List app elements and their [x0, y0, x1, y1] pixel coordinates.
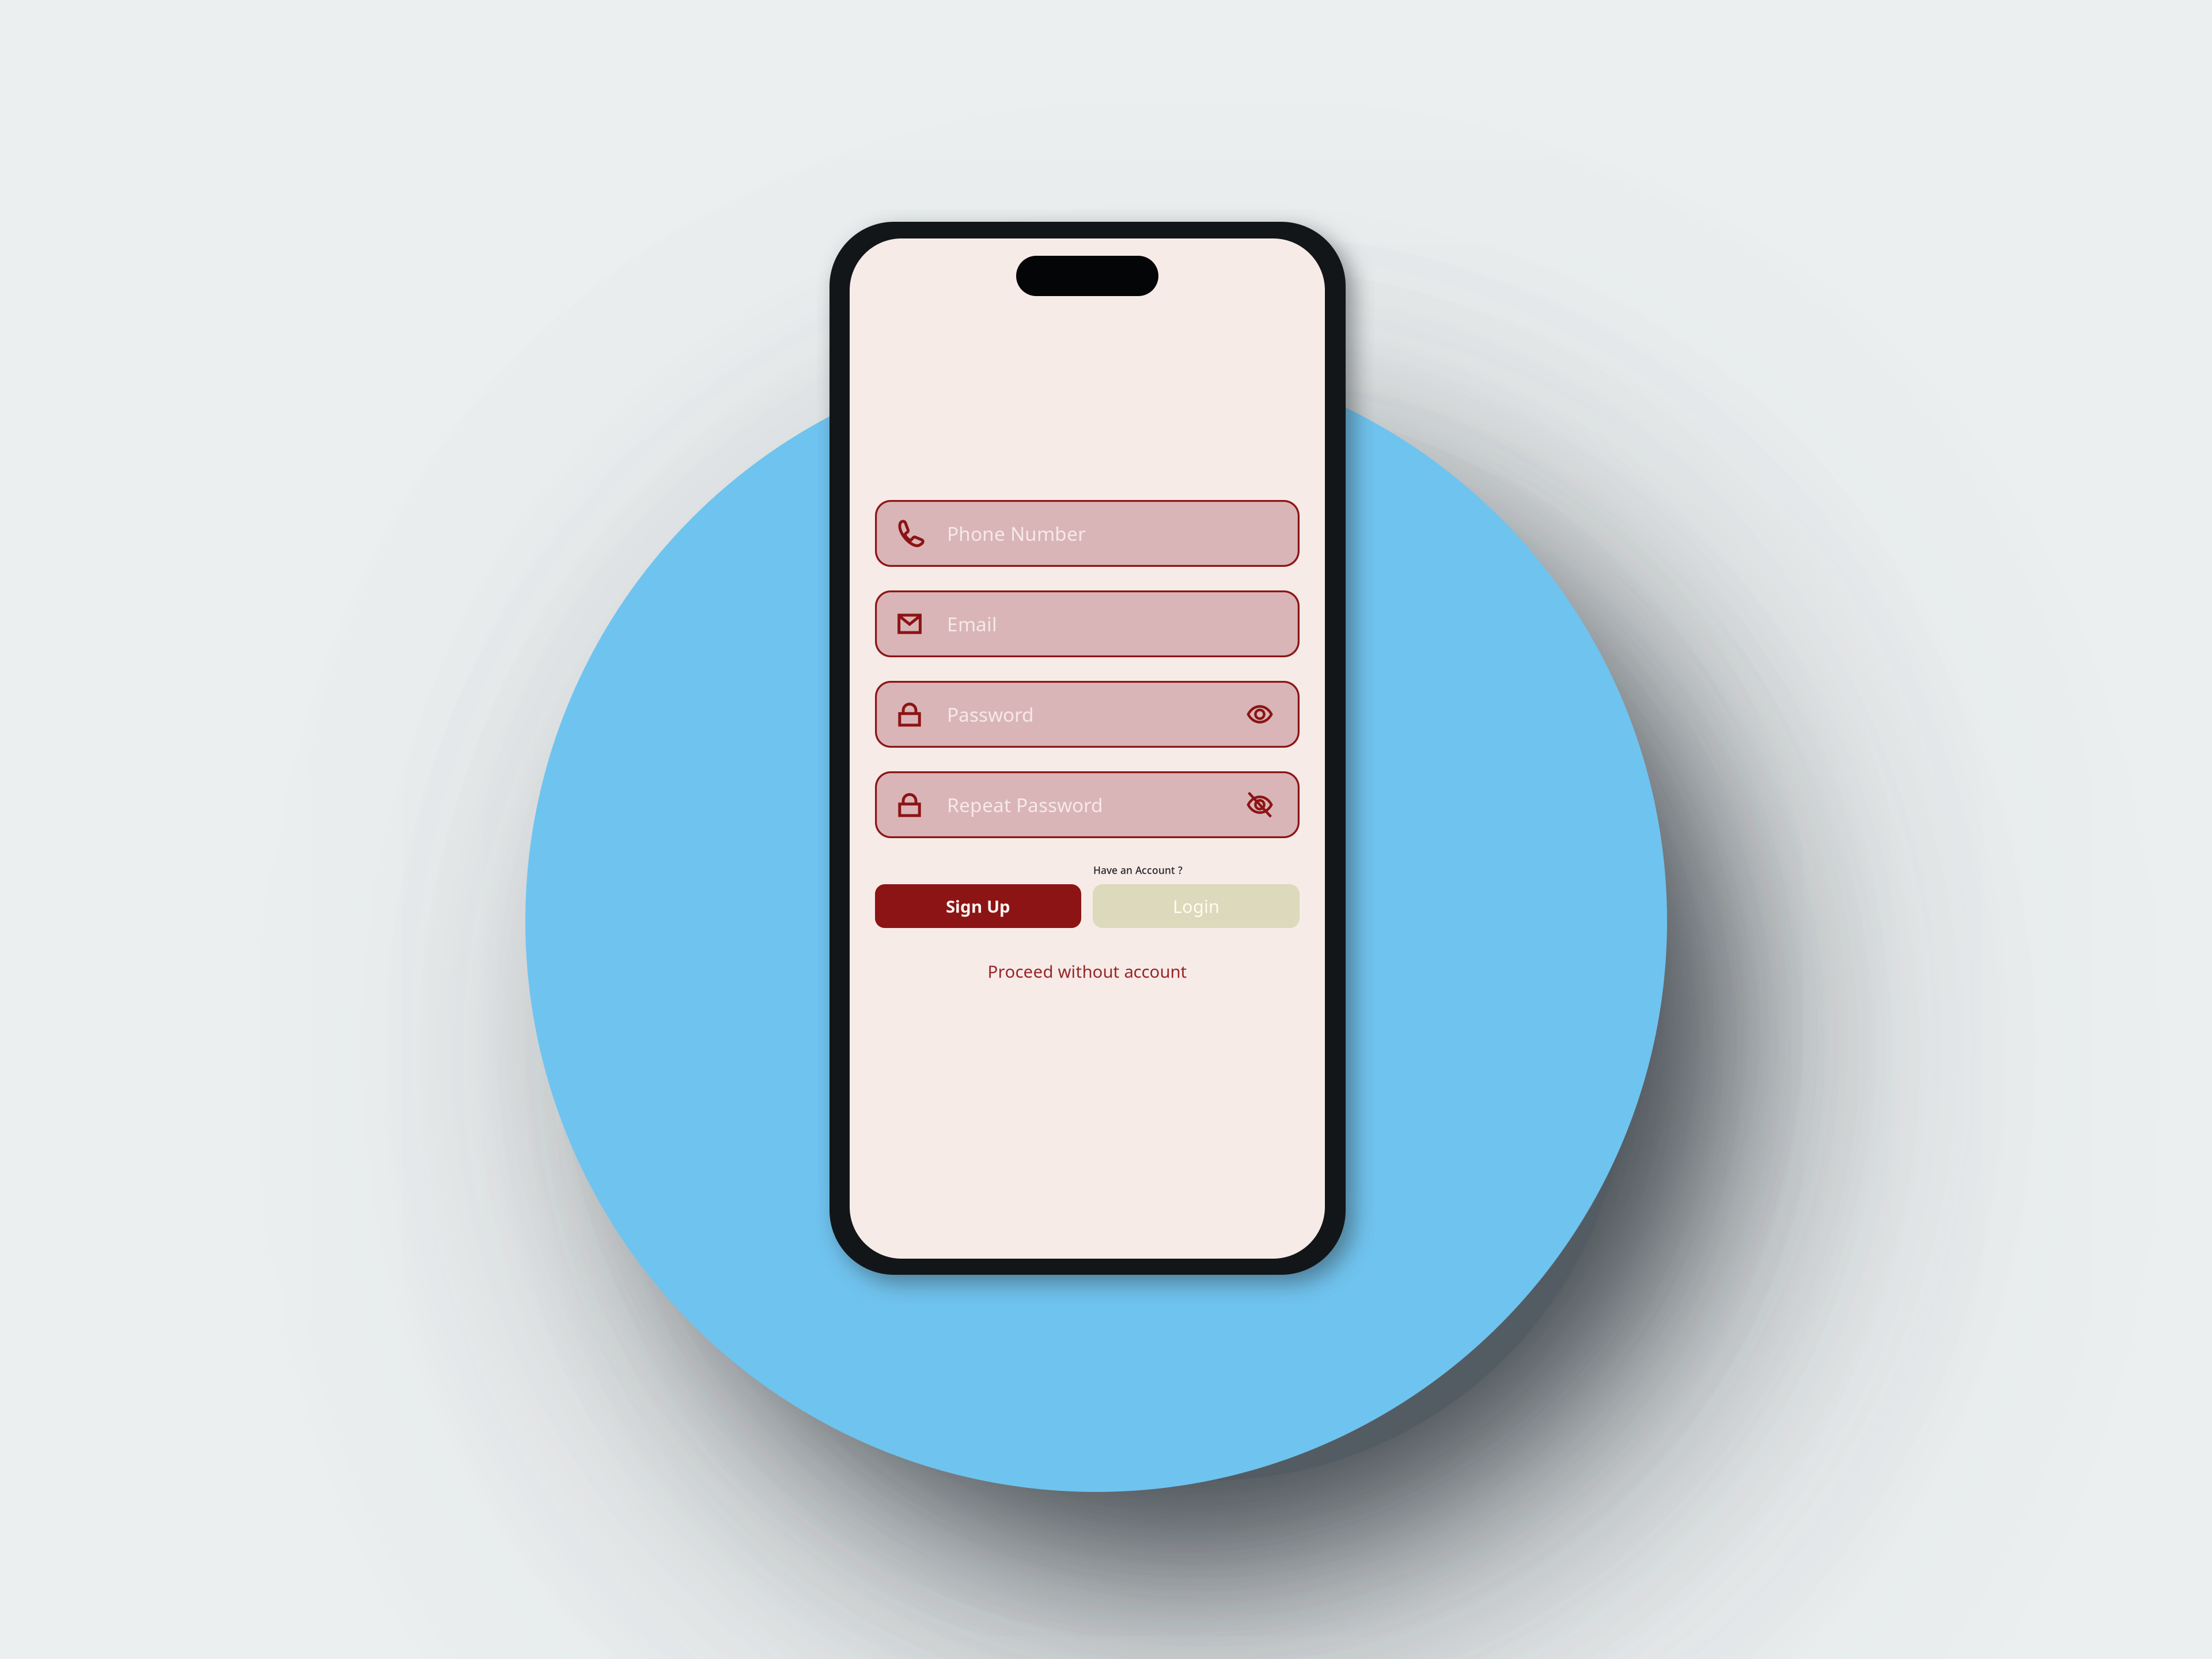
staticText: Login	[1173, 894, 1219, 918]
button[interactable]: Show password	[1220, 681, 1300, 748]
button[interactable]: Repeat Password	[875, 771, 1300, 838]
staticText: Repeat Password	[947, 792, 1103, 818]
staticText: Phone Number	[947, 521, 1086, 546]
staticText: Proceed without account	[988, 960, 1187, 982]
button[interactable]: Login	[1093, 884, 1300, 928]
staticText: Email	[947, 611, 997, 637]
staticText: Password	[947, 702, 1034, 727]
button[interactable]: Password	[875, 681, 1300, 748]
button[interactable]: Hide password	[1220, 771, 1300, 838]
button[interactable]: Proceed without account	[875, 955, 1300, 988]
button[interactable]: Phone Number	[875, 500, 1300, 567]
button[interactable]: Email	[875, 590, 1300, 657]
staticText: Sign Up	[946, 895, 1010, 917]
staticText: Have an Account ?	[1093, 863, 1183, 877]
button[interactable]: Sign Up	[875, 884, 1081, 928]
